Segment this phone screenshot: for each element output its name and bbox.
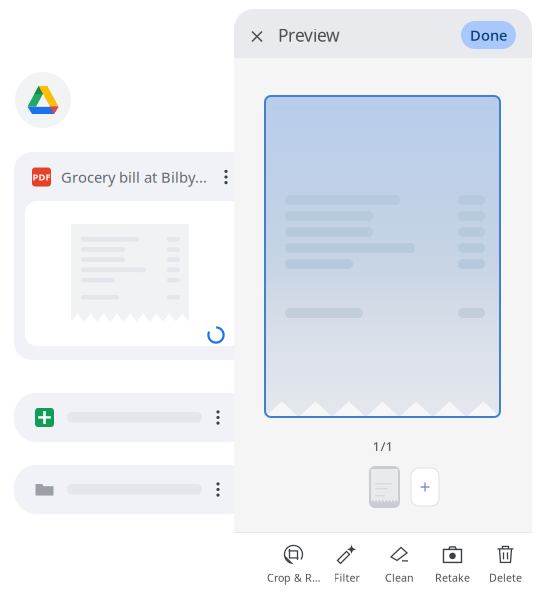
staticText: Filter xyxy=(333,570,359,585)
staticText: Preview xyxy=(278,23,340,46)
button[interactable]: Add page xyxy=(411,468,439,506)
button[interactable]: Crop & R... xyxy=(267,541,320,587)
staticText: PDF xyxy=(32,171,50,183)
button[interactable]: Delete xyxy=(479,541,532,587)
button[interactable]: Filter xyxy=(320,541,373,587)
staticText: Delete xyxy=(489,570,522,585)
button[interactable]: Retake xyxy=(426,541,479,587)
button[interactable]: Page 1 xyxy=(369,466,400,508)
button[interactable] xyxy=(14,393,250,442)
button[interactable] xyxy=(14,465,250,514)
button[interactable]: Clean xyxy=(373,541,426,587)
staticText: Grocery bill at Bilby... xyxy=(61,167,207,187)
button[interactable]: PDF xyxy=(14,152,250,360)
staticText: Done xyxy=(470,25,507,45)
button[interactable]: Done xyxy=(461,21,516,49)
staticText: Retake xyxy=(435,570,470,585)
staticText: Crop & R... xyxy=(267,570,320,585)
button[interactable]: Close xyxy=(241,21,272,52)
staticText: Clean xyxy=(385,570,414,585)
staticText: 1/1 xyxy=(372,437,393,455)
